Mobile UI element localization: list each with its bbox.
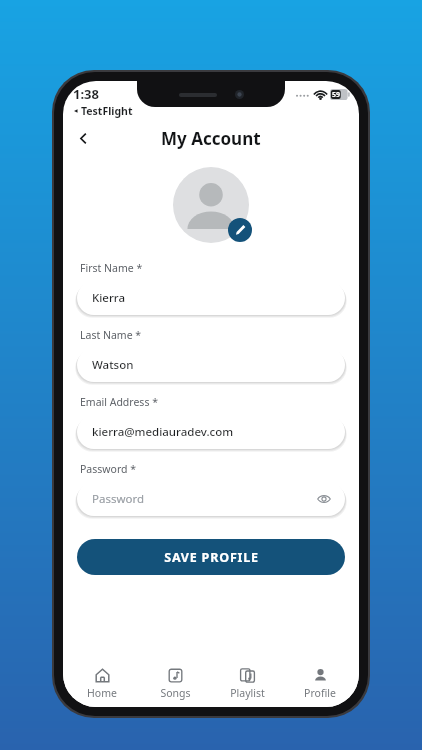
staticText: kierra@mediauradev.com (92, 424, 333, 440)
button[interactable]: Kierra (77, 281, 345, 315)
button[interactable]: Edit photo (228, 218, 252, 242)
staticText: Profile (304, 686, 336, 700)
button[interactable]: Back (67, 122, 99, 154)
button[interactable]: Show password (315, 490, 333, 508)
staticText: TestFlight (81, 104, 133, 118)
staticText: Password * (80, 462, 137, 476)
staticText: First Name * (80, 261, 143, 275)
staticText: Playlist (230, 686, 265, 700)
button[interactable]: Password (77, 482, 345, 516)
button[interactable]: kierra@mediauradev.com (77, 415, 345, 449)
staticText: SAVE PROFILE (164, 549, 259, 566)
staticText: Kierra (92, 290, 333, 306)
staticText: Home (87, 686, 117, 700)
staticText: 59 (332, 90, 341, 100)
button[interactable]: Songs (142, 665, 208, 703)
staticText: Password (92, 491, 315, 507)
staticText: Songs (160, 686, 191, 700)
button[interactable]: SAVE PROFILE (77, 539, 345, 575)
button[interactable]: Watson (77, 348, 345, 382)
staticText: Last Name * (80, 328, 142, 342)
staticText: 1:38 (73, 85, 99, 103)
staticText: My Account (161, 127, 261, 150)
button[interactable]: Playlist (214, 665, 280, 703)
staticText: Watson (92, 357, 333, 373)
staticText: Email Address * (80, 395, 158, 409)
button[interactable]: Home (69, 665, 135, 703)
button[interactable]: Profile (287, 665, 353, 703)
